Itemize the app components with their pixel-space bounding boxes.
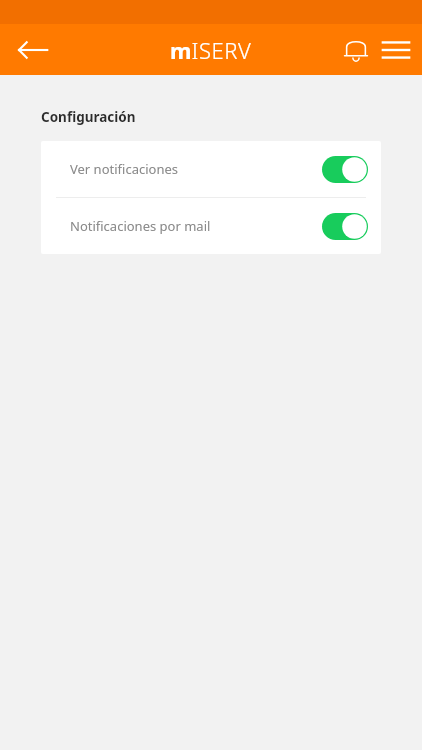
button[interactable]: Menu	[376, 30, 416, 70]
button[interactable]: Ver notificaciones	[41, 141, 381, 197]
staticText: Configuración	[41, 108, 136, 126]
staticText: Ver notificaciones	[70, 160, 178, 178]
button[interactable]: Notificaciones por mail	[41, 198, 381, 254]
button[interactable]: Notifications	[336, 30, 376, 70]
button[interactable]: Toggle	[322, 213, 368, 240]
staticText: mISERV	[170, 35, 252, 65]
staticText: Notificaciones por mail	[70, 217, 211, 235]
button[interactable]: Back	[10, 27, 56, 73]
button[interactable]: Toggle	[322, 156, 368, 183]
